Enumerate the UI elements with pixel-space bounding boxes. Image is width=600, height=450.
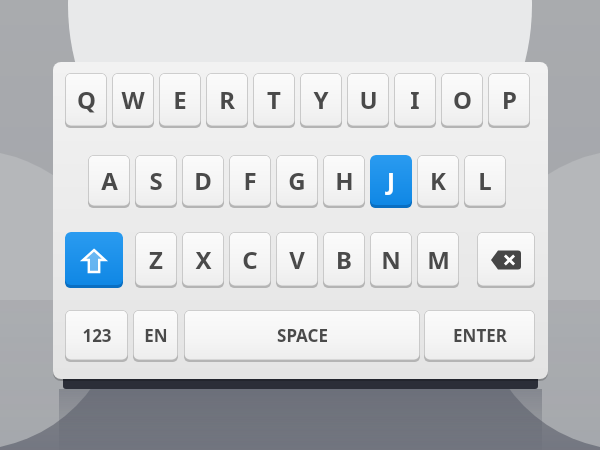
staticText: V (289, 243, 305, 276)
button[interactable]: N (370, 232, 412, 288)
button[interactable]: SPACE (184, 310, 420, 362)
button[interactable]: S (135, 155, 177, 208)
button[interactable]: D (182, 155, 224, 208)
button[interactable]: G (276, 155, 318, 208)
button[interactable]: K (417, 155, 459, 208)
button[interactable]: Shift (65, 232, 123, 288)
staticText: EN (144, 324, 168, 347)
button[interactable]: C (229, 232, 271, 288)
button[interactable]: Q (65, 73, 107, 128)
button[interactable]: EN (133, 310, 178, 362)
staticText: P (502, 83, 517, 116)
staticText: F (243, 164, 257, 197)
staticText: R (219, 83, 235, 116)
button[interactable]: 123 (65, 310, 128, 362)
staticText: W (121, 83, 145, 116)
button[interactable]: X (182, 232, 224, 288)
button[interactable]: T (253, 73, 295, 128)
button[interactable]: Backspace (477, 232, 535, 288)
button[interactable]: B (323, 232, 365, 288)
button[interactable]: I (394, 73, 436, 128)
staticText: X (195, 243, 212, 276)
staticText: N (381, 243, 401, 276)
staticText: L (478, 164, 492, 197)
button[interactable]: M (417, 232, 459, 288)
button[interactable]: P (488, 73, 530, 128)
staticText: Q (77, 83, 96, 116)
staticText: ENTER (453, 324, 507, 347)
button[interactable]: A (88, 155, 130, 208)
staticText: I (410, 83, 420, 116)
staticText: SPACE (277, 324, 328, 347)
button[interactable]: L (464, 155, 506, 208)
staticText: E (173, 83, 187, 116)
staticText: Z (149, 243, 163, 276)
staticText: T (267, 83, 281, 116)
staticText: B (336, 243, 352, 276)
staticText: S (149, 164, 163, 197)
staticText: Y (313, 83, 329, 116)
staticText: O (453, 83, 472, 116)
button[interactable]: O (441, 73, 483, 128)
button[interactable]: F (229, 155, 271, 208)
staticText: M (427, 243, 450, 276)
staticText: H (335, 164, 354, 197)
button[interactable]: U (347, 73, 389, 128)
button[interactable]: J (370, 155, 412, 208)
staticText: 123 (82, 324, 112, 347)
staticText: D (194, 164, 212, 197)
button[interactable]: V (276, 232, 318, 288)
button[interactable]: Z (135, 232, 177, 288)
button[interactable]: Y (300, 73, 342, 128)
staticText: C (242, 243, 258, 276)
button[interactable]: R (206, 73, 248, 128)
button[interactable]: W (112, 73, 154, 128)
staticText: A (101, 164, 118, 197)
button[interactable]: E (159, 73, 201, 128)
staticText: J (387, 164, 395, 197)
button[interactable]: ENTER (424, 310, 535, 362)
staticText: G (288, 164, 306, 197)
staticText: K (430, 164, 446, 197)
staticText: U (359, 83, 378, 116)
button[interactable]: H (323, 155, 365, 208)
